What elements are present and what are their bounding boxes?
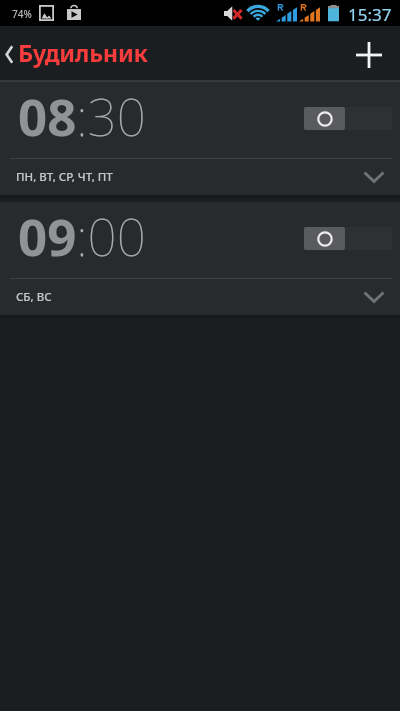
button[interactable]: ПН, ВТ, СР, ЧТ, ПТ bbox=[0, 159, 400, 195]
button[interactable]: Add alarm bbox=[340, 26, 400, 82]
staticText: 15:37 bbox=[348, 3, 392, 26]
staticText: СБ, ВС bbox=[16, 289, 52, 305]
button[interactable]: Expand bbox=[354, 279, 394, 315]
button[interactable]: 09:00 bbox=[0, 202, 400, 278]
staticText: 08:30 bbox=[18, 81, 146, 150]
staticText: 74% bbox=[12, 7, 32, 21]
staticText: Будильник bbox=[18, 37, 148, 69]
button[interactable]: Toggle alarm bbox=[304, 227, 392, 250]
button[interactable]: Back to Будильник bbox=[0, 26, 340, 82]
staticText: 09:00 bbox=[18, 201, 146, 270]
button[interactable]: Expand bbox=[354, 159, 394, 195]
button[interactable]: СБ, ВС bbox=[0, 279, 400, 315]
button[interactable]: Toggle alarm bbox=[304, 107, 392, 130]
button[interactable]: 08:30 bbox=[0, 82, 400, 158]
staticText: ПН, ВТ, СР, ЧТ, ПТ bbox=[16, 169, 113, 185]
